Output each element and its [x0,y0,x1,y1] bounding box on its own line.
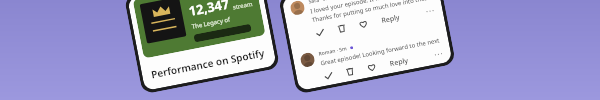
staticText: Great episode! Looking forward to the ne… [320,36,442,67]
staticText: streams [232,0,254,12]
button[interactable]: Published 5 days ago [133,0,266,59]
button[interactable]: Reply [381,12,401,26]
button[interactable]: More options [424,5,436,18]
button[interactable]: Delete [335,22,348,35]
staticText: Roman · 5m [318,45,348,58]
button[interactable]: Roman · 5m [299,24,445,89]
button[interactable]: Approve [322,69,335,82]
button[interactable]: More options [432,48,445,61]
staticText: I loved your episode. It was so much fun… [310,0,432,15]
button[interactable]: Go to episode [193,24,252,42]
button[interactable]: Delete [344,65,357,78]
staticText: Reply [389,56,410,69]
button[interactable]: Sara · 5m [289,0,437,45]
staticText: Sara · 5m [308,0,332,6]
staticText: 12,347 [187,0,231,20]
button[interactable]: Like [365,61,378,74]
button[interactable]: Like [357,18,370,30]
staticText: The Legacy of Alexander Hamilton [191,10,256,31]
button[interactable]: Reply [389,56,410,69]
button[interactable]: Approve [314,26,327,39]
staticText: Reply [381,12,401,26]
staticText: Performance on Spotify [150,45,266,81]
staticText: Thanks for putting so much love into the… [311,0,434,24]
